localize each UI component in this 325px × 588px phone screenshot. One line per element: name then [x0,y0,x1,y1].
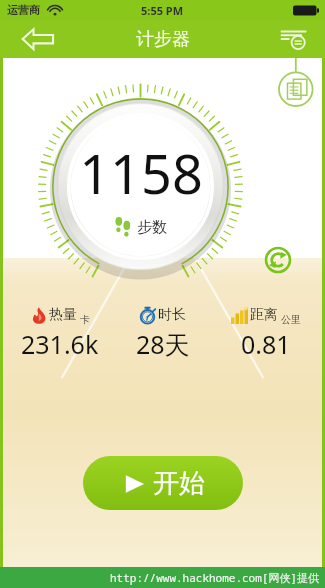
staticText: 计步器 [136,28,190,51]
button[interactable]: 热量 [8,306,111,361]
button[interactable]: 时长 [111,306,214,361]
button[interactable]: 开始 [83,456,243,510]
button[interactable]: 距离 [214,306,317,361]
staticText: 开始 [153,467,205,500]
staticText: 时长 [158,306,186,324]
button[interactable]: Back [18,24,58,54]
staticText: 231.6k [21,327,99,361]
staticText: 距离 [250,306,278,324]
staticText: 0.81 [241,327,291,361]
staticText: 公里 [281,313,301,326]
staticText: http://www.hackhome.com[网侠]提供 [110,570,319,585]
staticText: 28天 [136,327,190,361]
staticText: 卡 [80,313,90,326]
staticText: 热量 [49,306,77,324]
staticText: 5:55 PM [141,3,184,18]
button[interactable]: Refresh [265,247,291,273]
staticText: 运营商 [7,3,40,17]
button[interactable]: Menu [277,22,311,56]
staticText: 1158 [79,136,203,210]
button[interactable]: Records [277,58,317,110]
staticText: 步数 [137,218,167,237]
